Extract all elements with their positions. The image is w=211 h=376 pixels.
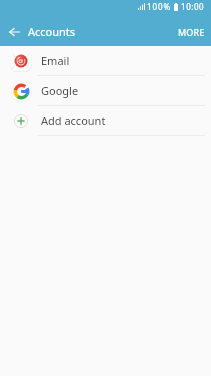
button[interactable]: Navigate up [0, 17, 28, 46]
staticText: 10:00 [181, 1, 205, 12]
staticText: 100% [147, 1, 171, 12]
button[interactable]: MORE [171, 17, 211, 46]
staticText: Email [41, 53, 70, 68]
button[interactable]: Email [0, 46, 211, 75]
staticText: MORE [178, 26, 205, 38]
button[interactable]: Google [0, 76, 211, 105]
staticText: Google [41, 83, 79, 98]
staticText: Accounts [28, 24, 76, 39]
button[interactable]: Add account [0, 106, 211, 135]
staticText: Add account [41, 113, 106, 128]
